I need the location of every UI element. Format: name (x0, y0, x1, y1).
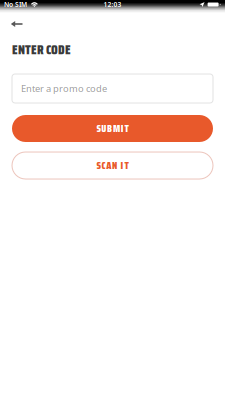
staticText: ENTER CODE (12, 39, 71, 60)
staticText: SCAN IT (97, 158, 128, 173)
button[interactable]: SCAN IT (12, 152, 213, 179)
staticText: No SIM (4, 0, 27, 9)
staticText: 12:03 (103, 0, 121, 9)
staticText: SUBMIT (96, 121, 128, 136)
button[interactable]: SUBMIT (12, 115, 213, 142)
button[interactable]: Back (0, 13, 38, 35)
staticText: Enter a promo code (21, 82, 107, 95)
